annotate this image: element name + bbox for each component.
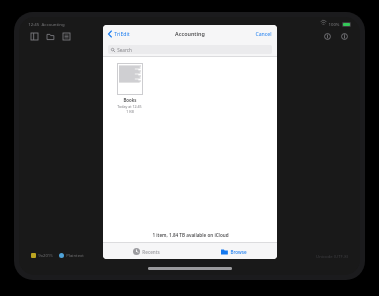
button[interactable]: Books — [111, 63, 148, 114]
button[interactable]: TriEdit — [108, 30, 130, 37]
staticText: 1 item, 1.84 TB available on iCloud — [152, 232, 229, 238]
staticText: 9x2015 — [38, 252, 53, 258]
staticText: Recents — [142, 249, 160, 255]
staticText: Cancel — [255, 30, 272, 37]
button[interactable]: Share — [323, 32, 332, 41]
staticText: 100% — [328, 21, 340, 27]
staticText: Unicode (UTF-8) — [316, 253, 348, 259]
staticText: 12:45 Accounting — [28, 21, 65, 27]
staticText: TriEdit — [114, 30, 130, 37]
button[interactable]: 9x2015 — [31, 252, 84, 258]
button[interactable]: New document — [62, 32, 71, 41]
button[interactable]: Cancel — [255, 30, 272, 37]
staticText: Search — [117, 47, 132, 53]
button[interactable]: Browse — [190, 245, 277, 258]
staticText: Today at 12:45 — [117, 104, 142, 109]
staticText: Browse — [230, 249, 247, 255]
button[interactable]: Open folder — [46, 32, 55, 41]
button[interactable]: Info — [340, 32, 349, 41]
staticText: Accounting — [175, 30, 205, 37]
staticText: 1 KB — [126, 109, 134, 114]
staticText: Plaintext — [66, 252, 84, 258]
staticText: Books — [123, 97, 137, 103]
button[interactable]: Sidebar — [30, 32, 39, 41]
button[interactable]: Recents — [103, 245, 190, 258]
button[interactable]: Search — [108, 45, 272, 54]
